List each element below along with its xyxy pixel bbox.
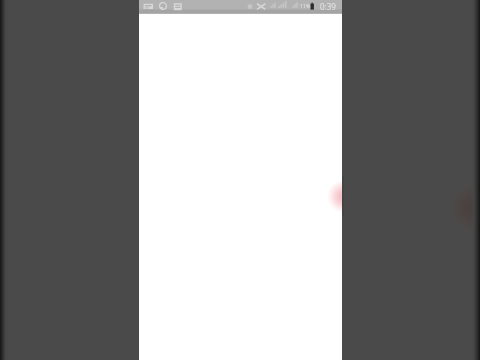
button[interactable]: Add: [328, 183, 342, 209]
staticText: 0:39: [320, 1, 336, 12]
staticText: 11%: [300, 2, 311, 9]
